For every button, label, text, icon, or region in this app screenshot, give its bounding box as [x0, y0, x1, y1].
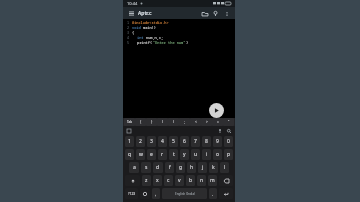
button[interactable]: q: [125, 149, 134, 160]
staticText: 7: [194, 138, 197, 145]
staticText: e: [150, 151, 153, 158]
button[interactable]: Run: [209, 103, 224, 118]
button[interactable]: 7: [191, 136, 200, 147]
button[interactable]: l: [220, 162, 229, 173]
staticText: z: [145, 177, 148, 184]
button[interactable]: .: [209, 188, 217, 199]
button[interactable]: f: [165, 162, 174, 173]
staticText: (: [162, 120, 163, 124]
button[interactable]: y: [180, 149, 189, 160]
button[interactable]: ): [168, 118, 179, 126]
staticText: num,n,c;: [146, 35, 164, 40]
button[interactable]: <: [190, 118, 201, 126]
staticText: Aptr.c: [138, 10, 152, 17]
button[interactable]: k: [209, 162, 218, 173]
button[interactable]: Menu: [127, 9, 135, 17]
staticText: u: [194, 151, 198, 158]
button[interactable]: i: [202, 149, 211, 160]
button[interactable]: 5: [169, 136, 178, 147]
button[interactable]: g: [176, 162, 185, 173]
button[interactable]: Enter: [219, 188, 233, 199]
button[interactable]: a: [129, 162, 139, 173]
button[interactable]: 3: [147, 136, 156, 147]
button[interactable]: d: [153, 162, 163, 173]
button[interactable]: 6: [180, 136, 189, 147]
button[interactable]: b: [186, 175, 195, 186]
staticText: x: [156, 177, 159, 184]
button[interactable]: Backspace: [219, 175, 233, 186]
button[interactable]: Location: [211, 9, 220, 18]
staticText: 9: [216, 138, 219, 145]
button[interactable]: p: [224, 149, 233, 160]
button[interactable]: >: [201, 118, 212, 126]
staticText: English (India): [175, 192, 195, 196]
button[interactable]: Emoji: [140, 188, 150, 199]
button[interactable]: 8: [202, 136, 211, 147]
button[interactable]: v: [175, 175, 184, 186]
staticText: =: [217, 120, 219, 124]
button[interactable]: e: [147, 149, 156, 160]
staticText: 6: [183, 138, 186, 145]
button[interactable]: 0: [224, 136, 233, 147]
button[interactable]: 4: [158, 136, 167, 147]
button[interactable]: o: [213, 149, 222, 160]
button[interactable]: =: [212, 118, 223, 126]
button[interactable]: t: [169, 149, 178, 160]
button[interactable]: Open folder: [200, 9, 209, 18]
button[interactable]: s: [141, 162, 151, 173]
button[interactable]: c: [164, 175, 173, 186]
staticText: ): [173, 120, 174, 124]
staticText: ?123: [128, 191, 136, 196]
staticText: c: [167, 177, 170, 184]
button[interactable]: Shift: [125, 175, 140, 186]
staticText: v: [178, 177, 181, 184]
button[interactable]: }: [146, 118, 157, 126]
button[interactable]: w: [136, 149, 145, 160]
button[interactable]: English (India): [162, 188, 207, 199]
button[interactable]: 2: [136, 136, 145, 147]
button[interactable]: n: [197, 175, 206, 186]
button[interactable]: x: [153, 175, 162, 186]
staticText: 3: [150, 138, 153, 145]
staticText: q: [128, 151, 132, 158]
button[interactable]: m: [208, 175, 217, 186]
staticText: 2: [123, 25, 129, 30]
staticText: h: [190, 164, 194, 171]
staticText: {: [132, 30, 135, 35]
staticText: g: [179, 164, 183, 171]
staticText: 1: [128, 138, 131, 145]
button[interactable]: ": [223, 118, 234, 126]
staticText: 3: [123, 30, 129, 35]
staticText: f: [169, 164, 171, 171]
button[interactable]: More options: [222, 9, 231, 18]
staticText: t: [173, 151, 175, 158]
staticText: Tab: [127, 120, 133, 124]
button[interactable]: {: [135, 118, 146, 126]
staticText: o: [216, 151, 220, 158]
button[interactable]: 1: [125, 136, 134, 147]
button[interactable]: Voice input: [217, 128, 223, 134]
button[interactable]: ?123: [125, 188, 138, 199]
button[interactable]: Tab: [124, 118, 135, 126]
staticText: {: [140, 120, 142, 124]
staticText: int: [137, 35, 146, 40]
button[interactable]: r: [158, 149, 167, 160]
button[interactable]: 9: [213, 136, 222, 147]
button[interactable]: Clipboard: [126, 128, 132, 134]
button[interactable]: ,: [152, 188, 160, 199]
button[interactable]: u: [191, 149, 200, 160]
staticText: w: [139, 151, 143, 158]
staticText: 4: [161, 138, 164, 145]
staticText: m: [210, 177, 215, 184]
button[interactable]: Search: [226, 128, 232, 134]
button[interactable]: j: [198, 162, 207, 173]
button[interactable]: z: [142, 175, 151, 186]
button[interactable]: ;: [179, 118, 190, 126]
staticText: j: [202, 164, 204, 171]
staticText: .: [212, 191, 214, 197]
staticText: void: [132, 25, 143, 30]
staticText: <: [195, 120, 197, 124]
button[interactable]: h: [187, 162, 196, 173]
button[interactable]: (: [157, 118, 168, 126]
